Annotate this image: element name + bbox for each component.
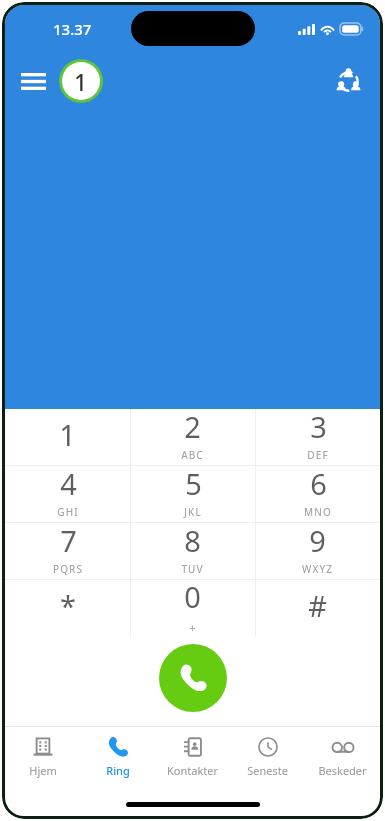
button[interactable]: # — [255, 580, 380, 637]
staticText: Ring — [106, 763, 130, 778]
staticText: GHI — [57, 505, 79, 519]
button[interactable]: Menu — [13, 61, 53, 101]
staticText: PQRS — [53, 562, 83, 576]
staticText: Seneste — [247, 763, 288, 778]
button[interactable]: Kontakter — [155, 727, 230, 787]
staticText: MNO — [304, 505, 332, 519]
button[interactable]: Call — [159, 644, 227, 712]
staticText: 9 — [309, 521, 326, 560]
staticText: 13.37 — [53, 19, 92, 39]
button[interactable]: 7 — [5, 523, 130, 580]
staticText: Beskeder — [318, 763, 367, 778]
button[interactable]: * — [5, 580, 130, 637]
staticText: 4 — [60, 464, 77, 503]
staticText: Hjem — [29, 763, 57, 778]
staticText: 5 — [185, 464, 202, 503]
staticText: DEF — [307, 448, 329, 462]
staticText: WXYZ — [302, 562, 333, 576]
staticText: 6 — [310, 464, 327, 503]
button[interactable]: 6 — [255, 466, 380, 523]
button[interactable]: 5 — [130, 466, 255, 523]
staticText: 1 — [74, 66, 88, 97]
button[interactable]: 1 — [57, 57, 105, 105]
button[interactable]: 1 — [5, 409, 130, 466]
staticText: TUV — [181, 562, 204, 576]
button[interactable]: Seneste — [230, 727, 305, 787]
staticText: # — [308, 586, 327, 625]
button[interactable]: 4 — [5, 466, 130, 523]
staticText: Kontakter — [167, 763, 218, 778]
staticText: ABC — [181, 448, 204, 462]
button[interactable]: Hjem — [5, 727, 80, 787]
staticText: 2 — [184, 407, 201, 446]
staticText: + — [189, 620, 196, 634]
button[interactable]: 8 — [130, 523, 255, 580]
button[interactable]: 0 — [130, 580, 255, 637]
button[interactable]: Conference — [328, 61, 368, 101]
staticText: 8 — [184, 521, 201, 560]
staticText: * — [60, 586, 76, 625]
staticText: 0 — [184, 577, 201, 616]
staticText: 7 — [60, 521, 77, 560]
button[interactable]: Ring — [80, 727, 155, 787]
button[interactable]: Beskeder — [305, 727, 380, 787]
staticText: JKL — [184, 505, 202, 519]
button[interactable]: 9 — [255, 523, 380, 580]
button[interactable]: 2 — [130, 409, 255, 466]
staticText: 1 — [59, 415, 76, 454]
staticText: 3 — [310, 407, 327, 446]
button[interactable]: 3 — [255, 409, 380, 466]
